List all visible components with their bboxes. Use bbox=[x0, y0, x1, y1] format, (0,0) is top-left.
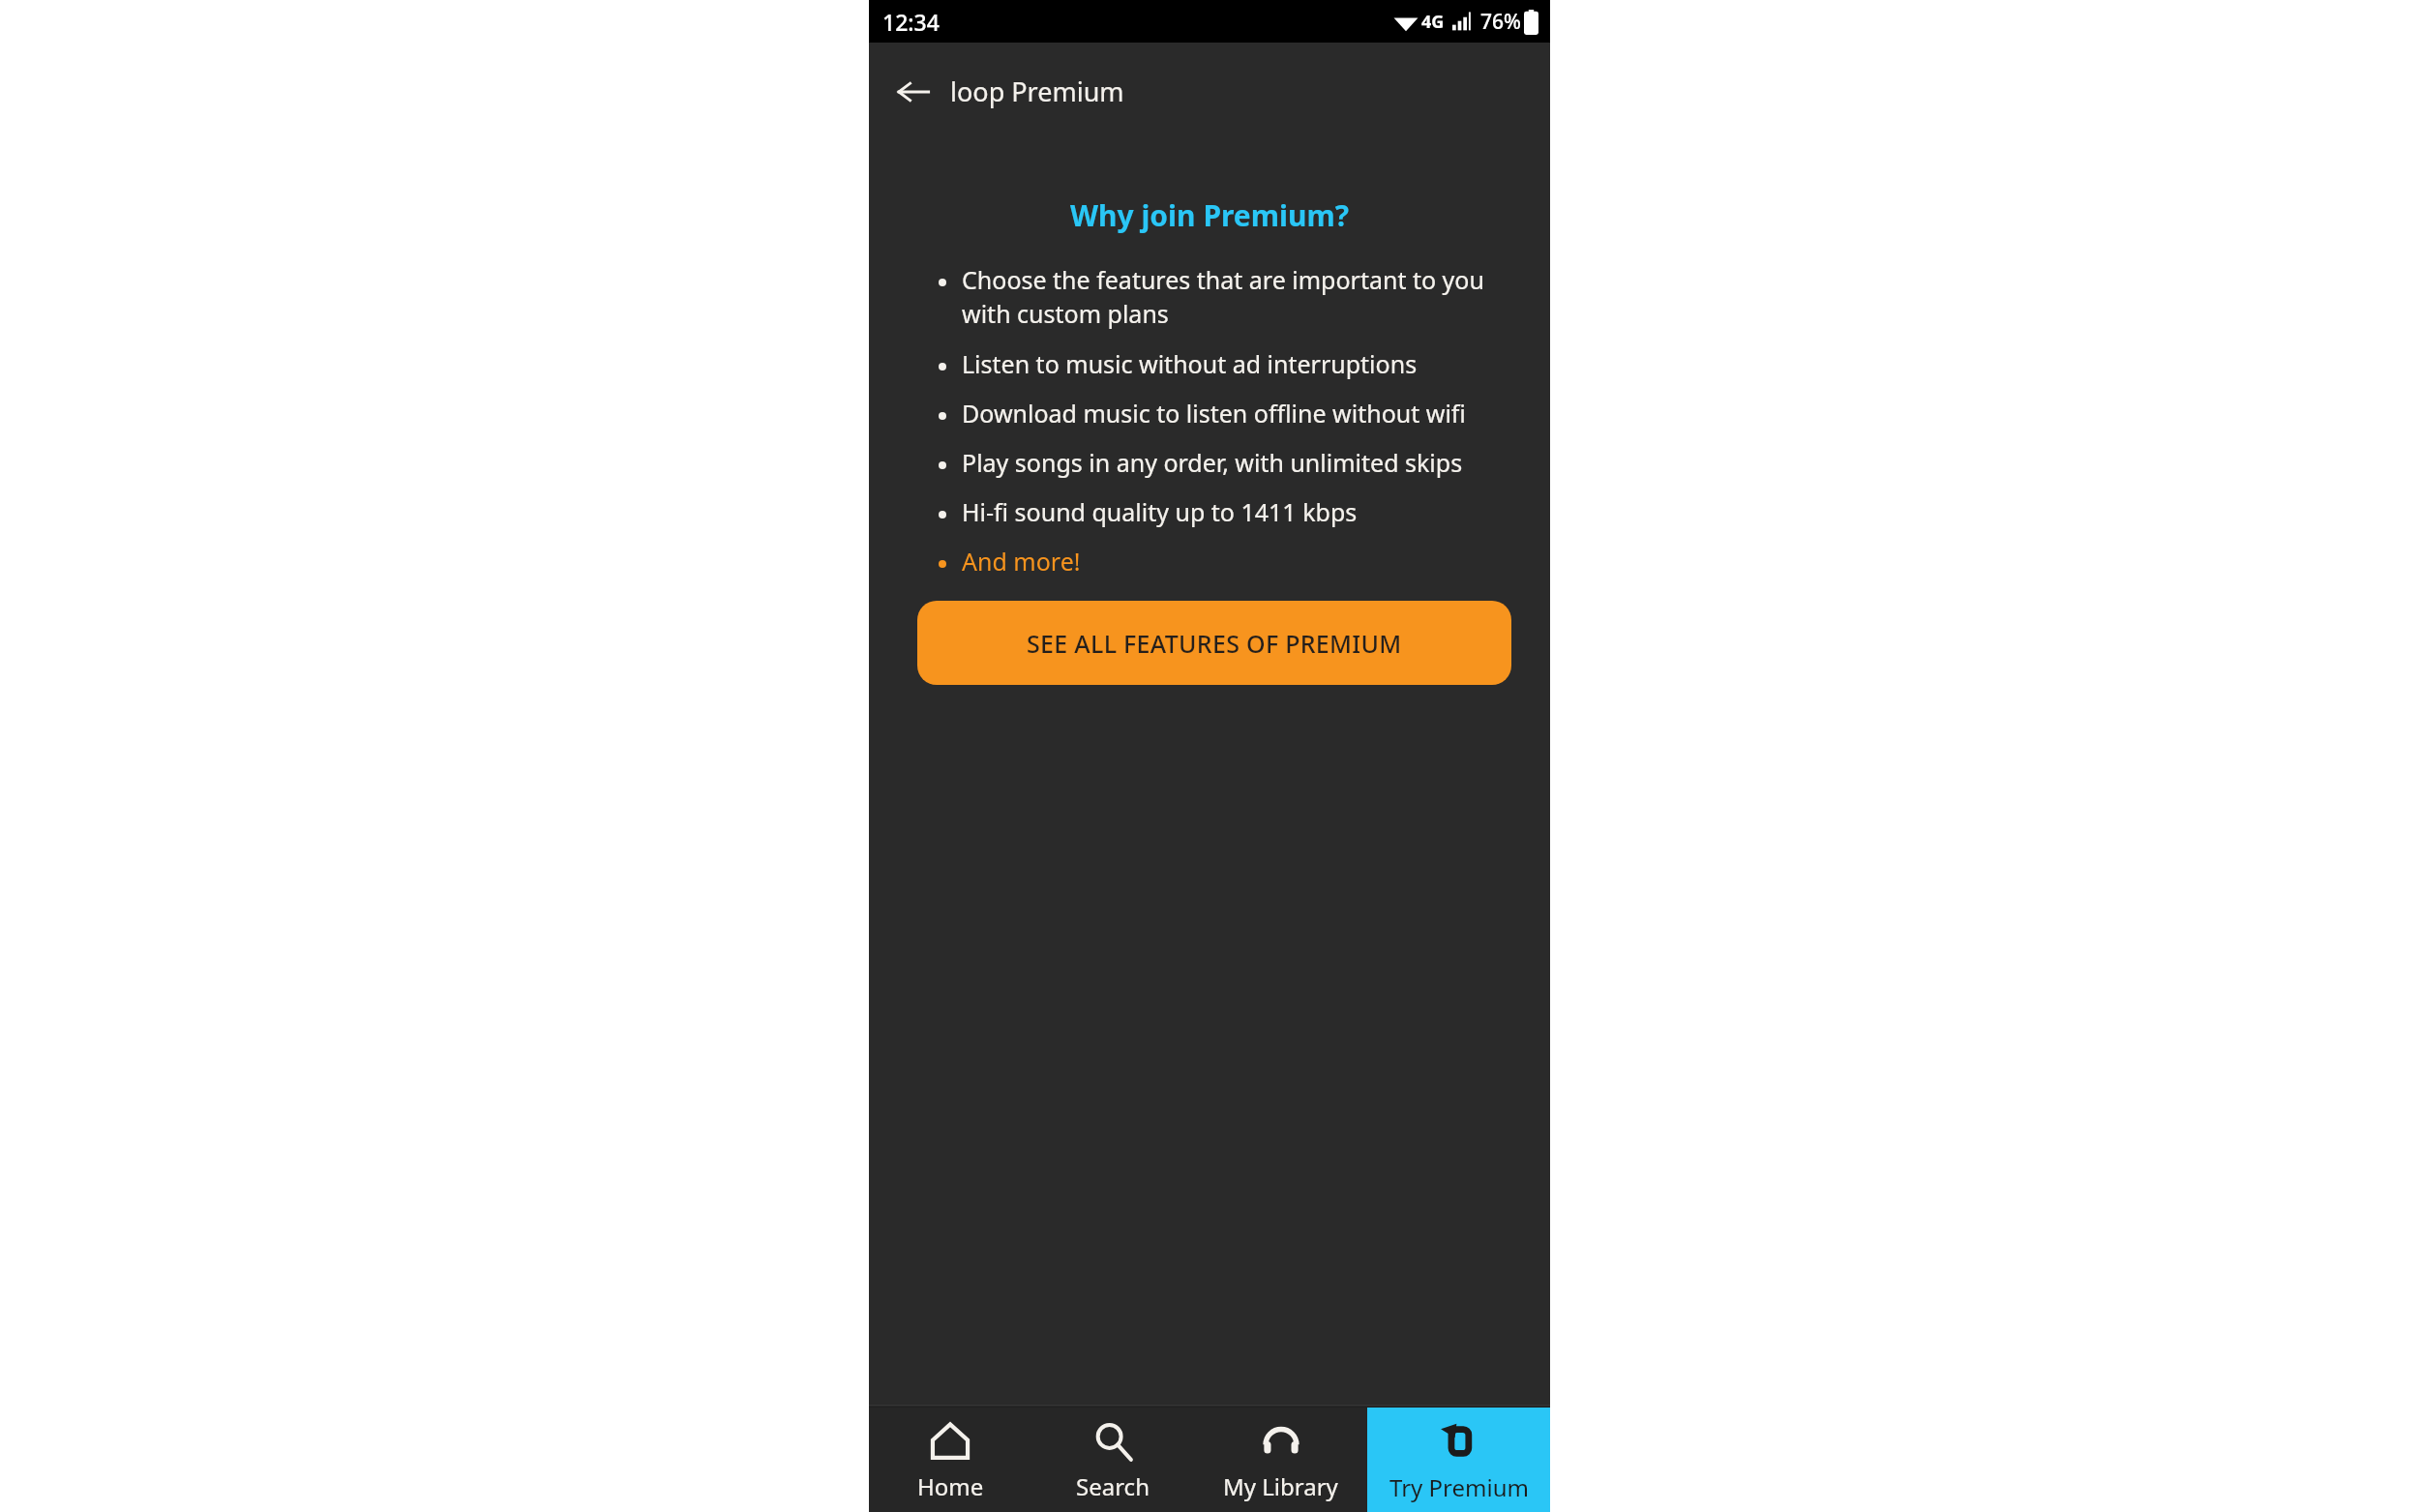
staticText: 76% bbox=[1480, 8, 1521, 36]
staticText: Search bbox=[1076, 1470, 1150, 1502]
button[interactable]: Back bbox=[890, 69, 937, 115]
button[interactable]: Home bbox=[869, 1408, 1031, 1512]
staticText: Home bbox=[917, 1470, 984, 1502]
staticText: 4G bbox=[1421, 10, 1445, 34]
button[interactable]: Search bbox=[1031, 1408, 1194, 1512]
staticText: Why join Premium? bbox=[869, 195, 1550, 235]
button[interactable]: Try Premium bbox=[1367, 1408, 1550, 1512]
staticText: And more! bbox=[962, 545, 1081, 578]
staticText: 12:34 bbox=[882, 7, 940, 37]
staticText: Listen to music without ad interruptions bbox=[962, 347, 1418, 380]
button[interactable]: My Library bbox=[1194, 1408, 1367, 1512]
staticText: SEE ALL FEATURES OF PREMIUM bbox=[1027, 627, 1402, 660]
staticText: Play songs in any order, with unlimited … bbox=[962, 446, 1463, 479]
staticText: Hi-fi sound quality up to 1411 kbps bbox=[962, 495, 1358, 528]
button[interactable]: SEE ALL FEATURES OF PREMIUM bbox=[917, 601, 1511, 685]
staticText: My Library bbox=[1223, 1470, 1338, 1502]
staticText: loop Premium bbox=[950, 74, 1124, 109]
staticText: Try Premium bbox=[1389, 1471, 1529, 1503]
staticText: Choose the features that are important t… bbox=[962, 263, 1508, 331]
staticText: Download music to listen offline without… bbox=[962, 397, 1466, 430]
